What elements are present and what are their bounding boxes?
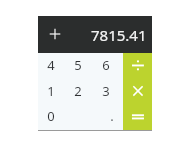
staticText: 3 — [102, 82, 110, 100]
staticText: 0 — [47, 107, 55, 125]
button[interactable]: . — [92, 103, 119, 128]
staticText: 5 — [74, 56, 82, 74]
staticText: 1 — [47, 82, 55, 100]
button[interactable]: Multiply — [123, 79, 152, 105]
staticText: 6 — [102, 56, 110, 74]
button[interactable]: 4 — [37, 52, 64, 77]
button[interactable]: 3 — [92, 78, 119, 103]
staticText: 2 — [74, 82, 82, 100]
staticText: 4 — [47, 56, 55, 74]
button[interactable]: Divide — [123, 53, 152, 79]
button[interactable]: Equals — [123, 105, 152, 131]
staticText: . — [110, 107, 114, 125]
button[interactable]: 5 — [64, 52, 91, 77]
button[interactable]: 2 — [64, 78, 91, 103]
button[interactable]: Add — [45, 24, 65, 44]
staticText: 7815.41 — [91, 25, 147, 45]
button[interactable]: 0 — [37, 103, 64, 128]
button[interactable]: 1 — [37, 78, 64, 103]
button[interactable]: 6 — [92, 52, 119, 77]
